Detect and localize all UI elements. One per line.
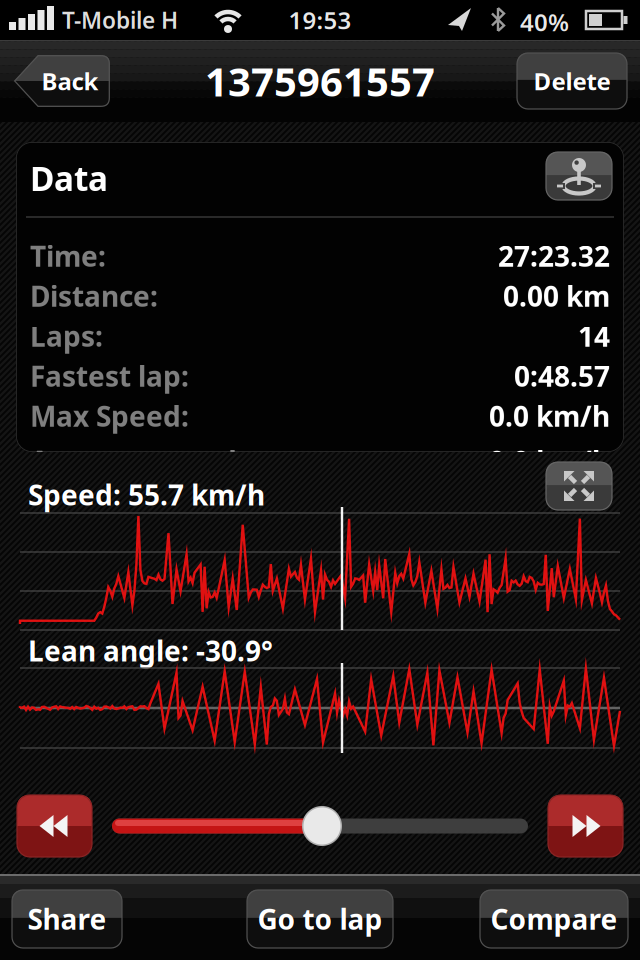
button[interactable]: Expand graph bbox=[546, 462, 612, 510]
staticText: Back bbox=[41, 65, 98, 97]
staticText: Distance: bbox=[30, 277, 158, 315]
staticText: 0.0 km/h bbox=[489, 442, 610, 480]
staticText: Average speed: bbox=[30, 442, 245, 480]
staticText: Share bbox=[27, 900, 106, 938]
staticText: 40% bbox=[520, 6, 569, 38]
staticText: Lean angle: -30.9° bbox=[28, 632, 273, 669]
button[interactable]: Go to lap bbox=[247, 890, 393, 948]
staticText: 19:53 bbox=[288, 4, 351, 36]
staticText: Compare bbox=[490, 900, 617, 938]
staticText: 27:23.32 bbox=[498, 237, 610, 275]
button[interactable]: Next lap bbox=[548, 795, 623, 857]
button[interactable]: Previous lap bbox=[17, 795, 92, 857]
staticText: 0.0 km/h bbox=[489, 397, 610, 435]
staticText: Max Speed: bbox=[30, 397, 189, 435]
staticText: 0:48.57 bbox=[514, 357, 610, 395]
staticText: 14 bbox=[578, 317, 610, 355]
staticText: T-Mobile H bbox=[62, 5, 178, 35]
button[interactable]: Share bbox=[12, 890, 122, 948]
staticText: 0.00 km bbox=[503, 277, 610, 315]
button[interactable]: Show on map bbox=[546, 152, 612, 200]
staticText: Go to lap bbox=[257, 900, 382, 938]
staticText: Delete bbox=[533, 65, 610, 97]
staticText: Speed: 55.7 km/h bbox=[28, 476, 265, 513]
button[interactable]: Delete bbox=[517, 53, 627, 109]
button[interactable]: Back bbox=[14, 55, 110, 107]
staticText: 1375961557 bbox=[205, 54, 435, 107]
button[interactable]: Compare bbox=[480, 890, 628, 948]
staticText: Time: bbox=[30, 237, 106, 275]
button[interactable]: Playback position bbox=[302, 806, 342, 846]
staticText: Fastest lap: bbox=[30, 357, 189, 395]
staticText: Data bbox=[30, 156, 108, 200]
staticText: Laps: bbox=[30, 317, 103, 355]
